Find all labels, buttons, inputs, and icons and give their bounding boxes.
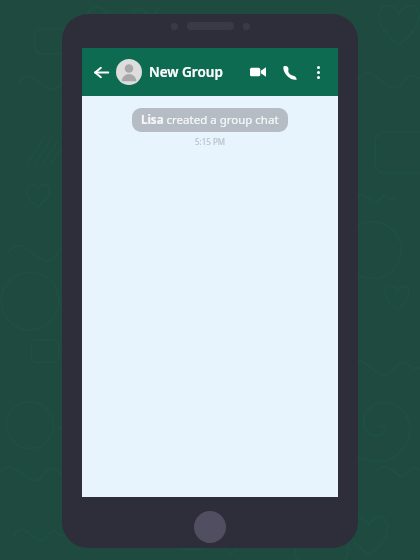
staticText: 5:15 PM [195,136,226,147]
button[interactable]: More options [306,60,330,84]
button[interactable]: Lisa created a group chat [132,108,288,132]
button[interactable]: Call [276,58,304,86]
button[interactable]: Home [194,511,226,543]
button[interactable]: New Group [116,48,244,96]
button[interactable]: Video call [244,58,272,86]
button[interactable]: Back [88,59,114,85]
staticText: Lisa created a group chat [141,112,279,128]
staticText: New Group [149,63,223,81]
